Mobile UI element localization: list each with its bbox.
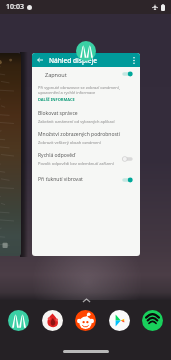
button[interactable]: Motorola app xyxy=(76,41,96,61)
staticText: Rychlá odpověď xyxy=(38,152,76,159)
staticText: Povolit odpovědi bez odemknutí zařízení xyxy=(38,161,114,166)
button[interactable]: Back xyxy=(35,55,45,65)
staticText: Při vypnuté obrazovce se zobrazí oznámen… xyxy=(38,85,120,95)
button[interactable]: Množství zobrazených podrobností xyxy=(38,127,134,148)
button[interactable]: Zapnout xyxy=(45,67,134,81)
button[interactable]: Toggle on xyxy=(121,70,134,78)
button[interactable]: Play Store xyxy=(109,310,130,331)
staticText: Zabránit oznámení od vybraných aplikací xyxy=(38,119,115,124)
button[interactable]: Toggle on xyxy=(121,176,134,184)
button[interactable]: DALŠÍ INFORMACE xyxy=(38,97,75,102)
staticText: Náhled displeje xyxy=(49,56,97,65)
staticText: Zapnout xyxy=(45,71,67,78)
button[interactable]: Motorola xyxy=(8,310,29,331)
button[interactable]: Previous app xyxy=(0,53,21,256)
staticText: 10:03 xyxy=(6,2,24,12)
button[interactable]: Back xyxy=(32,53,140,256)
button[interactable]: Reddit xyxy=(75,310,96,331)
button[interactable]: Rychlá odpověď xyxy=(38,148,134,169)
staticText: Množství zobrazených podrobností xyxy=(38,131,120,138)
button[interactable]: Blokovat správce xyxy=(38,106,134,127)
staticText: DALŠÍ INFORMACE xyxy=(38,97,75,102)
staticText: Při ťuknutí vibrovat xyxy=(38,176,83,183)
button[interactable]: More options xyxy=(129,55,139,65)
staticText: Blokovat správce xyxy=(38,110,78,117)
button[interactable]: Při ťuknutí vibrovat xyxy=(38,169,134,190)
button[interactable]: Show all apps xyxy=(82,298,91,303)
button[interactable]: Ember xyxy=(42,310,63,331)
staticText: Zobrazit veškerý obsah oznámení xyxy=(38,140,101,145)
button[interactable]: Toggle off xyxy=(121,155,134,163)
button[interactable]: Spotify xyxy=(142,310,163,331)
